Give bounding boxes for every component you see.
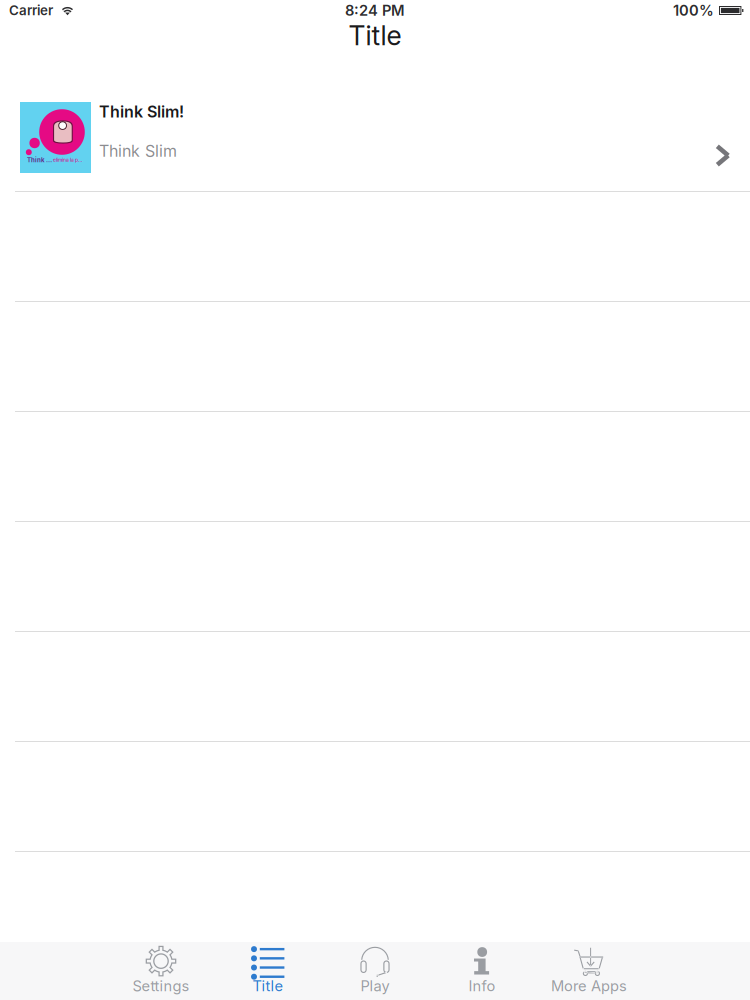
staticText: elimina la pancia (53, 157, 84, 163)
staticText: Title (252, 977, 283, 995)
staticText: Play (360, 977, 389, 995)
button[interactable]: Think Slim! (0, 90, 750, 192)
staticText: Think Slim! (99, 102, 184, 121)
button[interactable]: More Apps (535, 942, 642, 1000)
button[interactable]: Info (428, 942, 535, 1000)
staticText: Think Slim (99, 141, 177, 161)
button[interactable]: Title (214, 942, 321, 1000)
button[interactable]: Settings (107, 942, 214, 1000)
staticText: Carrier (9, 2, 53, 18)
staticText: Title (348, 19, 401, 52)
button[interactable]: Play (321, 942, 428, 1000)
staticText: Settings (132, 977, 189, 995)
staticText: Info (468, 977, 495, 995)
staticText: 100% (673, 2, 714, 19)
staticText: Think Slim! (27, 156, 53, 164)
staticText: More Apps (551, 977, 627, 995)
staticText: 8:24 PM (345, 2, 405, 19)
